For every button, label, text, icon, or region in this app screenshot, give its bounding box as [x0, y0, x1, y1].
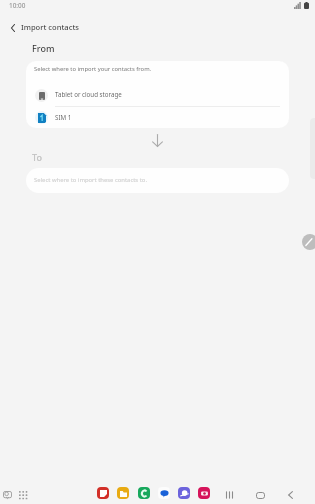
button[interactable]: SIM 1	[26, 106, 289, 128]
button[interactable]: Contacts	[138, 487, 150, 499]
button[interactable]: Edge panel handle	[302, 234, 315, 250]
staticText: Tablet or cloud storage	[55, 90, 122, 98]
button[interactable]: Camera	[198, 487, 210, 499]
button[interactable]: Notes	[97, 487, 109, 499]
button[interactable]: Tablet or cloud storage	[26, 83, 289, 105]
staticText: SIM 1	[55, 113, 72, 121]
staticText: From	[32, 42, 55, 54]
button[interactable]: Home	[252, 487, 268, 503]
button[interactable]: Apps	[15, 487, 30, 502]
button[interactable]: Recent screenshot	[0, 487, 15, 502]
staticText: To	[32, 151, 42, 163]
button[interactable]: My Files	[117, 487, 129, 499]
button[interactable]: Back	[283, 487, 298, 502]
button[interactable]: Select where to import these contacts to…	[26, 168, 289, 193]
staticText: Select where to import your contacts fro…	[34, 65, 152, 73]
staticText: Import contacts	[21, 22, 80, 32]
staticText: 10:00	[9, 1, 26, 10]
button[interactable]: Messages	[158, 487, 170, 499]
staticText: Select where to import these contacts to…	[34, 176, 147, 184]
button[interactable]: Recent apps	[222, 487, 237, 502]
button[interactable]: Navigate up	[2, 17, 23, 38]
button[interactable]: Internet	[178, 487, 190, 499]
